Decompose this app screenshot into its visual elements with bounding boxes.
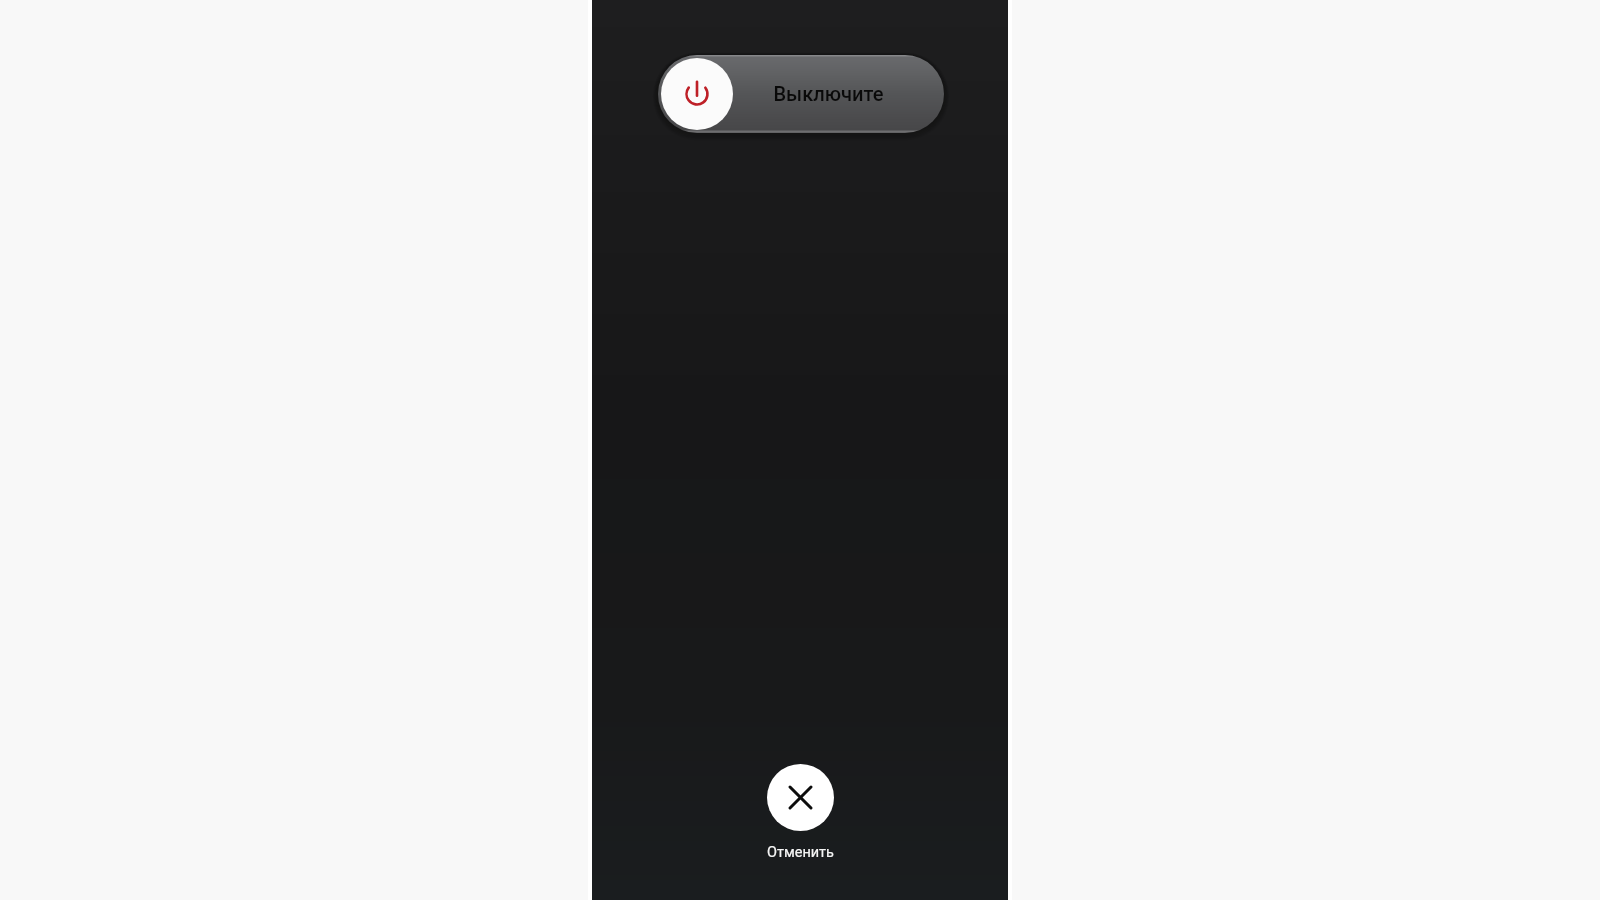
button[interactable]: Выключите — [658, 55, 944, 133]
button[interactable]: Отменить (закрыть) — [767, 764, 834, 831]
button[interactable]: Отменить — [767, 844, 834, 861]
staticText: Отменить — [767, 844, 834, 861]
staticText: Выключите — [722, 82, 935, 105]
